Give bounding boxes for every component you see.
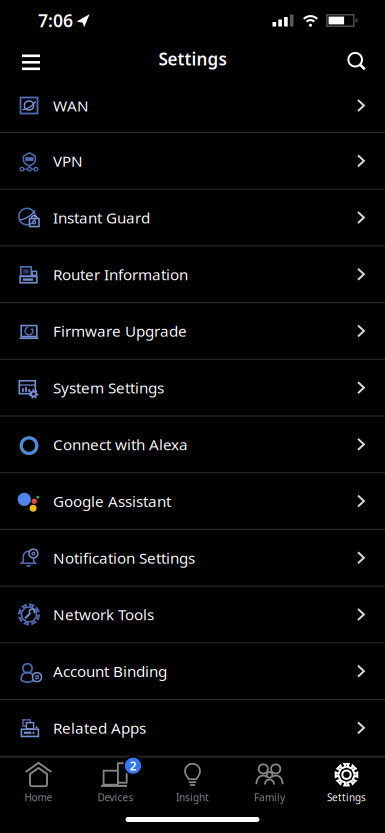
staticText: System Settings xyxy=(53,378,164,398)
button[interactable]: Settings xyxy=(308,762,385,804)
staticText: Devices xyxy=(97,791,133,804)
staticText: Related Apps xyxy=(53,718,146,738)
button[interactable]: Insight xyxy=(154,762,231,804)
staticText: Settings xyxy=(327,791,366,804)
button[interactable]: WAN xyxy=(0,88,385,133)
staticText: Settings xyxy=(158,48,226,70)
button[interactable]: Home xyxy=(0,762,77,804)
button[interactable]: Instant Guard xyxy=(0,190,385,246)
staticText: VPN xyxy=(53,151,83,171)
staticText: Account Binding xyxy=(53,661,167,681)
staticText: Connect with Alexa xyxy=(53,434,188,454)
button[interactable]: Network Tools xyxy=(0,587,385,643)
staticText: Notification Settings xyxy=(53,548,195,568)
staticText: Insight xyxy=(176,791,209,804)
button[interactable]: Family xyxy=(231,762,308,804)
button[interactable]: Connect with Alexa xyxy=(0,416,385,473)
staticText: WAN xyxy=(53,95,89,116)
staticText: 7:06 xyxy=(38,9,73,32)
button[interactable]: Menu xyxy=(0,39,40,83)
button[interactable]: Search xyxy=(347,39,385,82)
staticText: Router Information xyxy=(53,264,188,284)
staticText: Network Tools xyxy=(53,604,154,625)
button[interactable]: Firmware Upgrade xyxy=(0,303,385,360)
button[interactable]: 2 xyxy=(77,762,154,804)
staticText: Home xyxy=(24,791,52,804)
staticText: Instant Guard xyxy=(53,207,150,228)
button[interactable]: System Settings xyxy=(0,360,385,416)
button[interactable]: Router Information xyxy=(0,246,385,303)
staticText: 2 xyxy=(129,758,136,774)
staticText: Family xyxy=(254,791,285,804)
staticText: Firmware Upgrade xyxy=(53,321,187,341)
button[interactable]: Google Assistant xyxy=(0,473,385,530)
button[interactable]: Notification Settings xyxy=(0,530,385,587)
button[interactable]: VPN xyxy=(0,133,385,190)
button[interactable]: Related Apps xyxy=(0,700,385,757)
staticText: Google Assistant xyxy=(53,491,171,511)
button[interactable]: Account Binding xyxy=(0,643,385,700)
